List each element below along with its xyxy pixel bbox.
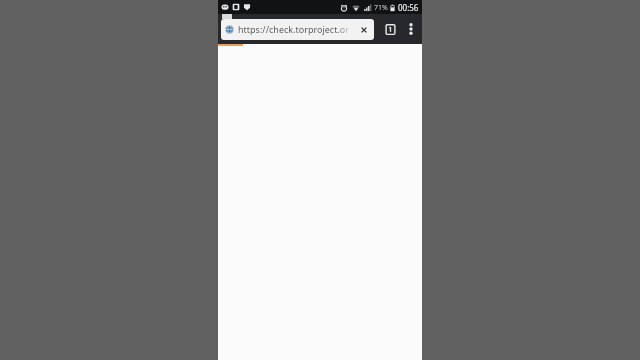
staticText: https://check.torproject.or <box>238 23 349 35</box>
staticText: 71% <box>374 3 388 13</box>
button[interactable]: Tabs <box>380 16 400 42</box>
button[interactable]: More options <box>402 16 420 42</box>
button[interactable]: https://check.torproject.or <box>221 19 374 40</box>
button[interactable]: Stop loading <box>353 19 374 40</box>
staticText: 00:56 <box>398 2 419 13</box>
